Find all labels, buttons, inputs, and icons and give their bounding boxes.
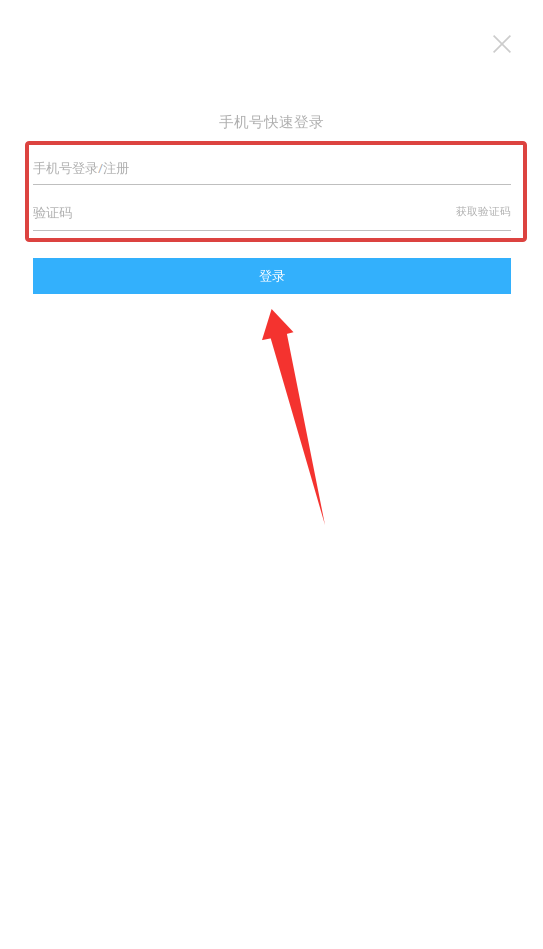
- button[interactable]: 验证码: [33, 204, 333, 230]
- button[interactable]: 获取验证码: [456, 204, 511, 231]
- staticText: 获取验证码: [456, 205, 511, 218]
- button[interactable]: Close: [480, 22, 524, 66]
- staticText: 验证码: [33, 204, 72, 221]
- staticText: 登录: [259, 268, 285, 284]
- staticText: 手机号快速登录: [219, 113, 324, 131]
- button[interactable]: 登录: [33, 258, 511, 294]
- staticText: 手机号登录/注册: [33, 159, 129, 177]
- button[interactable]: 手机号登录/注册: [33, 159, 511, 185]
